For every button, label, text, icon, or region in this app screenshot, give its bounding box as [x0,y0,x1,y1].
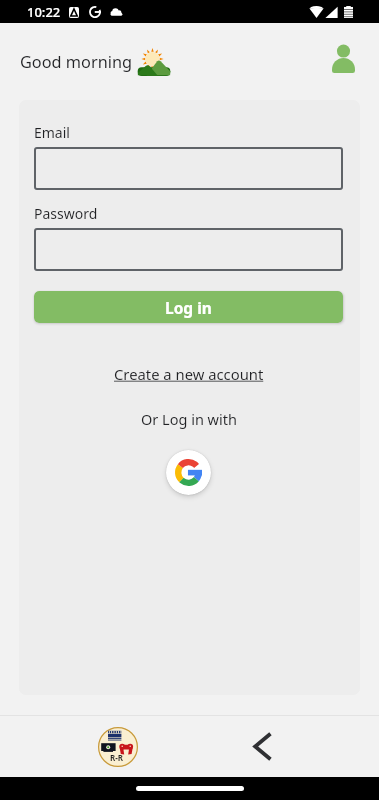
button[interactable]: Log in with Google [166,450,211,495]
staticText: Password [34,204,98,223]
staticText: Email [34,123,70,142]
button[interactable]: Home [98,727,138,767]
staticText: Good morning [20,51,133,73]
staticText: Log in [165,297,212,318]
button[interactable]: Back [241,726,282,767]
button[interactable]: Log in [34,291,343,323]
button[interactable] [34,228,343,271]
staticText: 10:22 [27,3,61,21]
staticText: Or Log in with [141,409,237,429]
button[interactable]: Create a new account [114,364,264,384]
staticText: R-R [110,752,124,763]
button[interactable] [34,147,343,190]
button[interactable]: Profile [327,43,359,75]
